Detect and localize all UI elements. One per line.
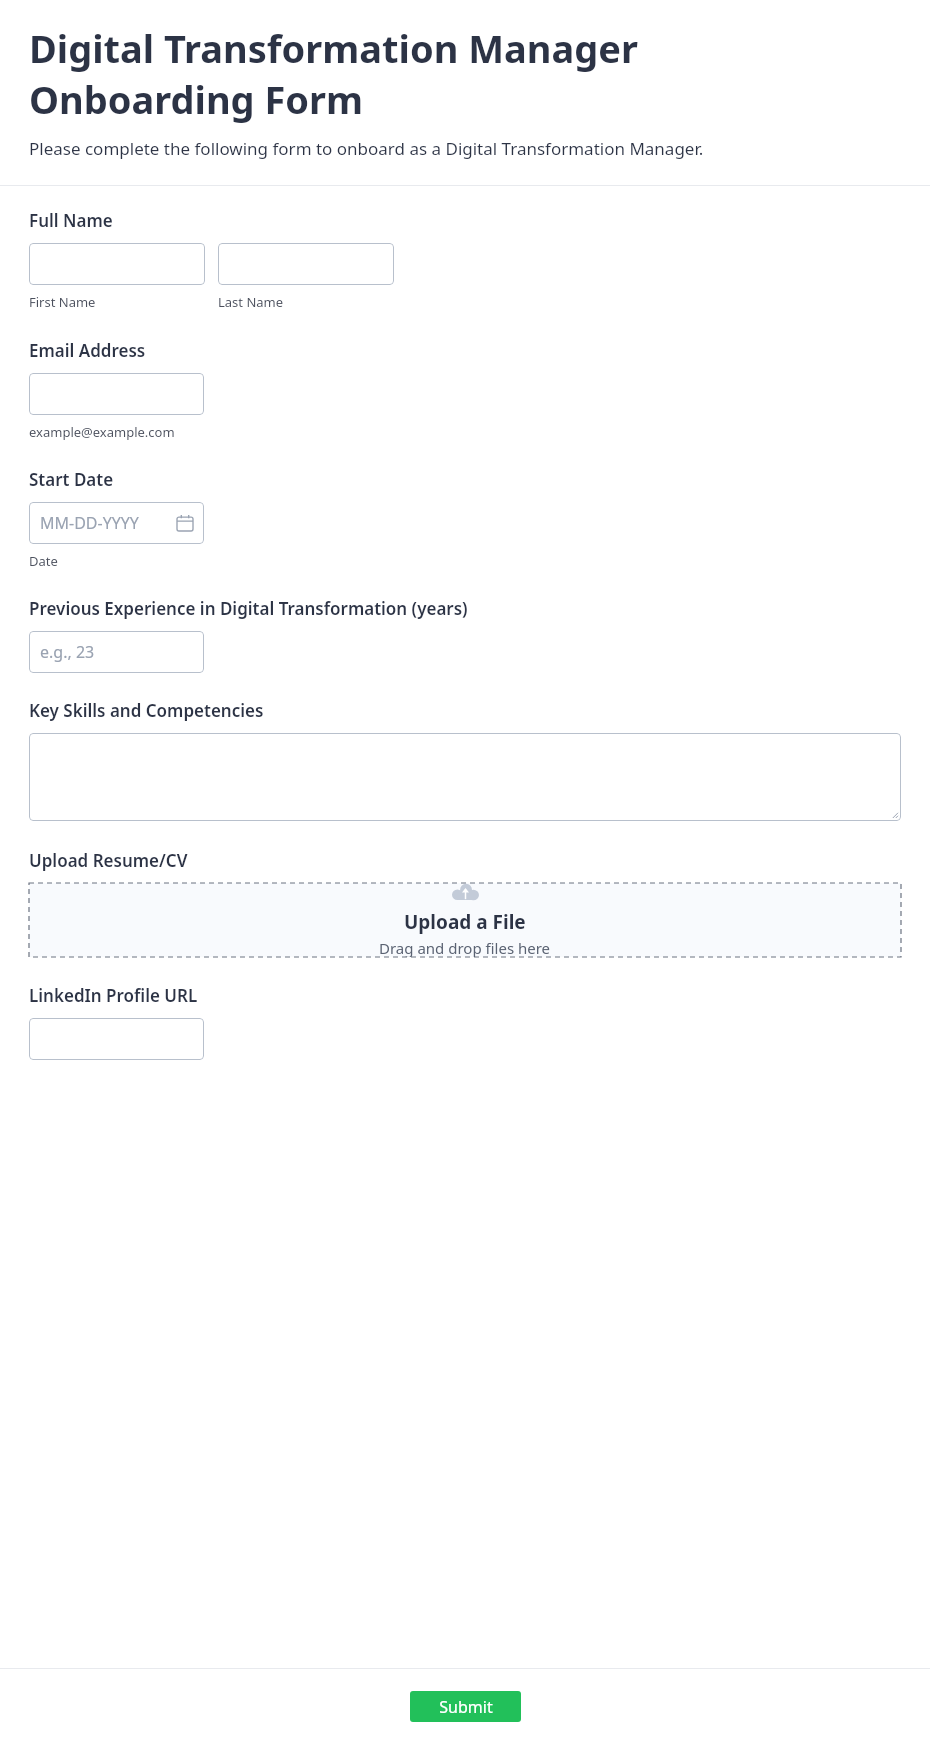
button[interactable] <box>29 733 901 821</box>
staticText: Date <box>29 552 58 570</box>
staticText: First Name <box>29 293 96 311</box>
staticText: Upload a File <box>404 909 526 935</box>
staticText: e.g., 23 <box>40 641 95 663</box>
button[interactable]: e.g., 23 <box>29 631 204 673</box>
button[interactable]: Upload a file <box>29 883 901 957</box>
button[interactable] <box>29 1018 204 1060</box>
other: Pick date <box>177 515 193 531</box>
staticText: example@example.com <box>29 423 175 441</box>
other: Upload a file <box>452 883 479 902</box>
staticText: Key Skills and Competencies <box>29 699 264 722</box>
staticText: MM-DD-YYYY <box>40 512 139 534</box>
staticText: Upload Resume/CV <box>29 849 188 872</box>
staticText: Drag and drop files here <box>379 938 551 957</box>
staticText: Submit <box>439 1696 493 1718</box>
button[interactable] <box>29 243 205 285</box>
button[interactable] <box>218 243 394 285</box>
staticText: Full Name <box>29 209 113 232</box>
staticText: Last Name <box>218 293 284 311</box>
staticText: Digital Transformation Manager Onboardin… <box>29 22 638 125</box>
button[interactable]: Submit <box>410 1691 521 1722</box>
button[interactable] <box>29 373 204 415</box>
staticText: LinkedIn Profile URL <box>29 984 198 1007</box>
staticText: Please complete the following form to on… <box>29 137 704 160</box>
staticText: Previous Experience in Digital Transform… <box>29 597 468 620</box>
staticText: Email Address <box>29 339 146 362</box>
button[interactable]: MM-DD-YYYY <box>29 502 204 544</box>
staticText: Start Date <box>29 468 114 491</box>
